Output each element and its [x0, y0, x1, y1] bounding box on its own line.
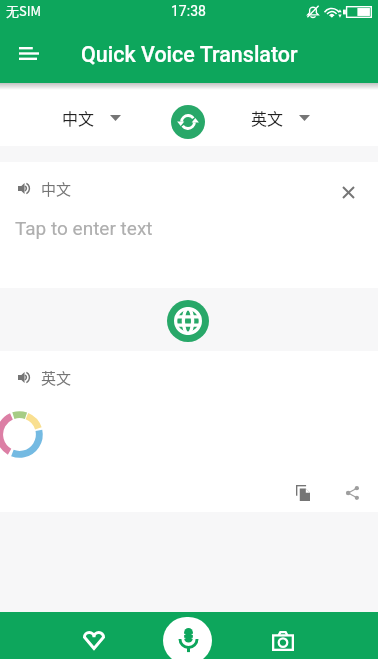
button[interactable]: Swap languages [171, 105, 205, 139]
staticText: 17:38 [171, 3, 206, 19]
button[interactable]: Clear text [332, 176, 364, 208]
staticText: 英文 [251, 106, 284, 129]
staticText: 中文 [41, 178, 72, 200]
button[interactable]: Share translation [337, 478, 367, 508]
button[interactable]: Open navigation menu [8, 32, 50, 74]
button[interactable]: Translate [167, 300, 209, 342]
staticText: 中文 [62, 106, 95, 129]
button[interactable]: Copy translation [288, 478, 318, 508]
button[interactable]: Tap to enter text [0, 216, 378, 288]
button[interactable]: 英文 [18, 368, 72, 390]
staticText: Quick Voice Translator [81, 42, 298, 67]
button[interactable]: 中文 [18, 179, 72, 201]
button[interactable]: Favorites [0, 612, 189, 659]
staticText: 无SIM [6, 1, 42, 20]
button[interactable]: 中文 [52, 96, 131, 139]
button[interactable]: Camera translate [189, 612, 378, 659]
button[interactable]: Voice input [163, 617, 212, 659]
button[interactable]: 英文 [241, 96, 320, 139]
staticText: 英文 [41, 367, 72, 389]
staticText: Tap to enter text [15, 217, 153, 239]
